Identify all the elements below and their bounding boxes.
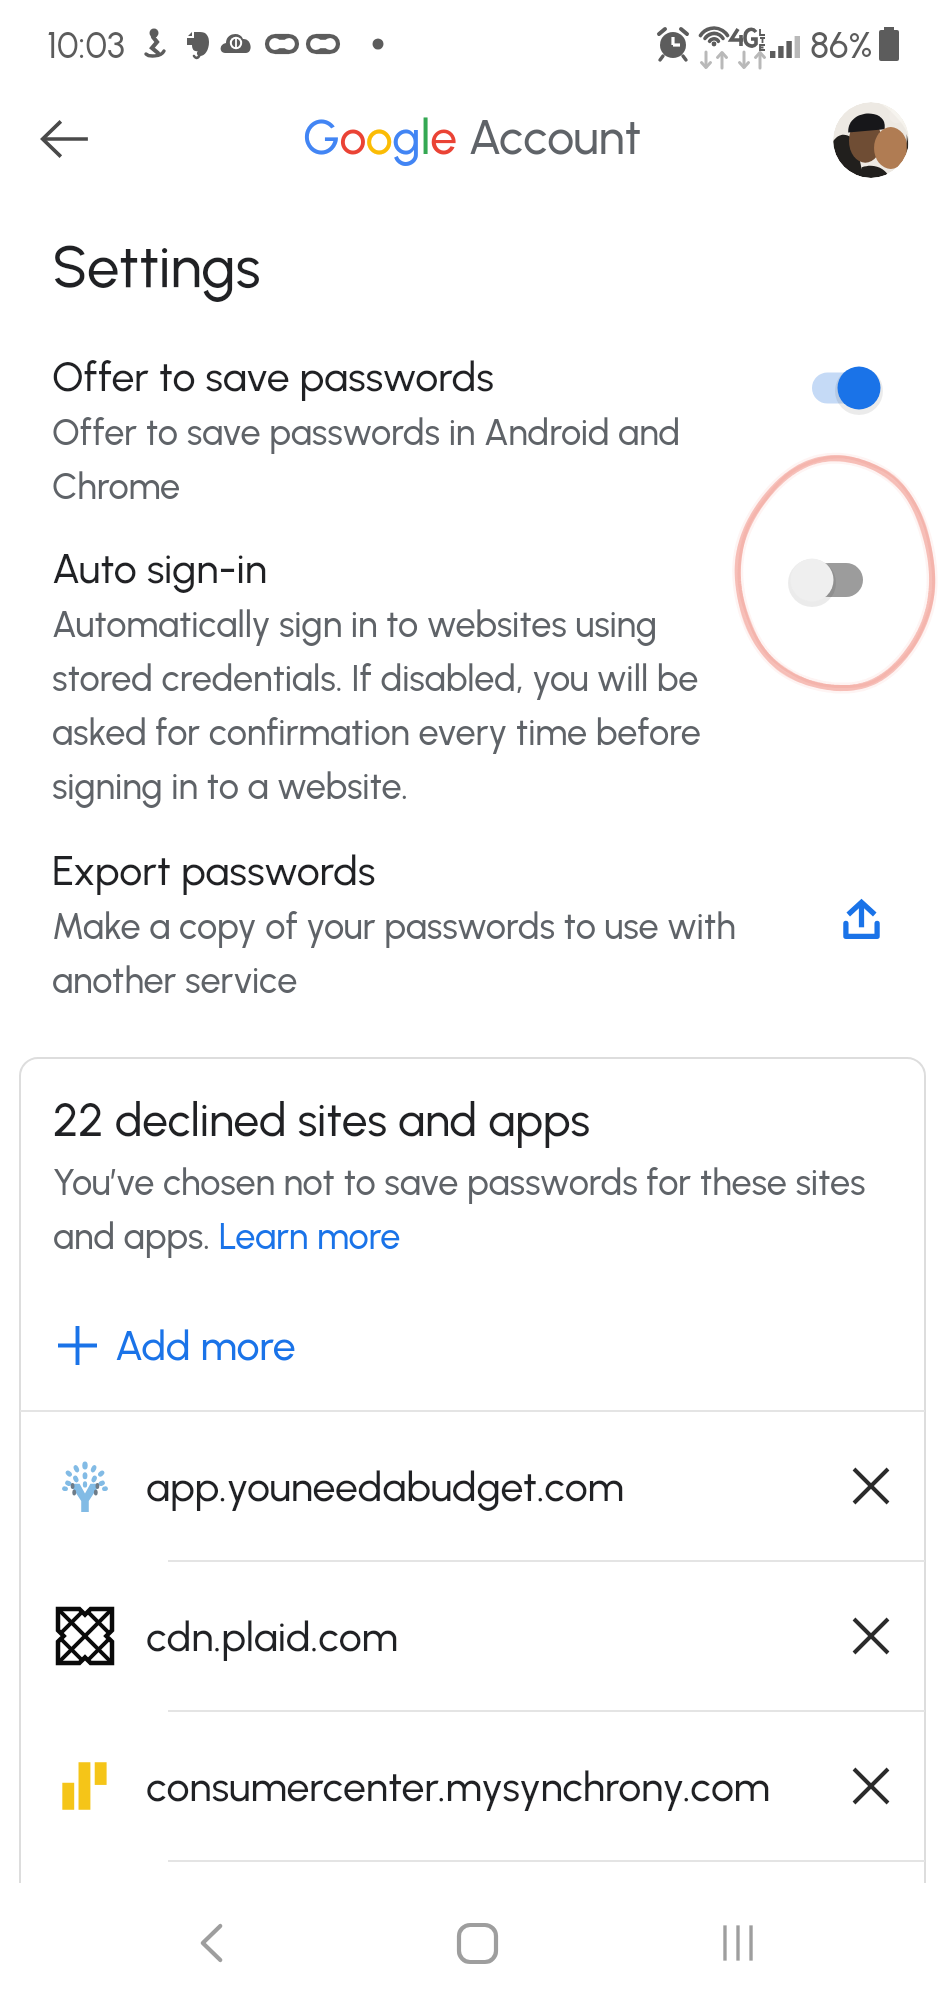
button[interactable]: consumercenter.mysynchrony.com (20, 1712, 925, 1860)
staticText: Offer to save passwords (52, 352, 494, 401)
staticText: 10:03 (47, 24, 125, 67)
staticText: You’ve chosen not to save passwords for … (53, 1161, 903, 1258)
staticText: Offer to save passwords in Android and C… (52, 411, 692, 508)
button[interactable]: Offer to save passwords (0, 352, 945, 508)
staticText: Settings (52, 232, 261, 302)
button[interactable]: Offer to save passwords, on (793, 352, 929, 424)
staticText: 86% (810, 24, 873, 67)
button[interactable]: Add more (20, 1258, 925, 1410)
button[interactable]: Export passwords (0, 846, 945, 1002)
button[interactable]: Home (412, 1887, 542, 1995)
staticText: Automatically sign in to websites using … (52, 603, 702, 808)
button[interactable]: Recent apps (673, 1887, 803, 1995)
staticText: cdn.plaid.com (146, 1612, 833, 1661)
staticText: 22 declined sites and apps (53, 1092, 591, 1147)
button[interactable]: Remove cdn.plaid.com (833, 1598, 909, 1674)
staticText: Make a copy of your passwords to use wit… (52, 905, 752, 1002)
staticText: Google Account (303, 108, 642, 166)
button[interactable]: cdn.plaid.com (20, 1562, 925, 1710)
staticText: Add more (115, 1321, 296, 1370)
button[interactable]: Back (28, 102, 102, 176)
button[interactable]: Auto sign-in (0, 544, 945, 808)
button[interactable]: Remove app.youneedabudget.com (833, 1448, 909, 1524)
button[interactable]: Auto sign-in, off (793, 544, 929, 616)
button[interactable]: app.youneedabudget.com (20, 1412, 925, 1560)
button[interactable]: Back (147, 1887, 277, 1995)
button[interactable]: Remove consumercenter.mysynchrony.com (833, 1748, 909, 1824)
staticText: Auto sign-in (52, 544, 267, 593)
staticText: Export passwords (52, 846, 376, 895)
button[interactable]: Google Account profile photo (833, 102, 909, 178)
staticText: app.youneedabudget.com (146, 1462, 833, 1511)
button[interactable]: Export passwords (813, 871, 909, 967)
staticText: consumercenter.mysynchrony.com (146, 1762, 833, 1811)
